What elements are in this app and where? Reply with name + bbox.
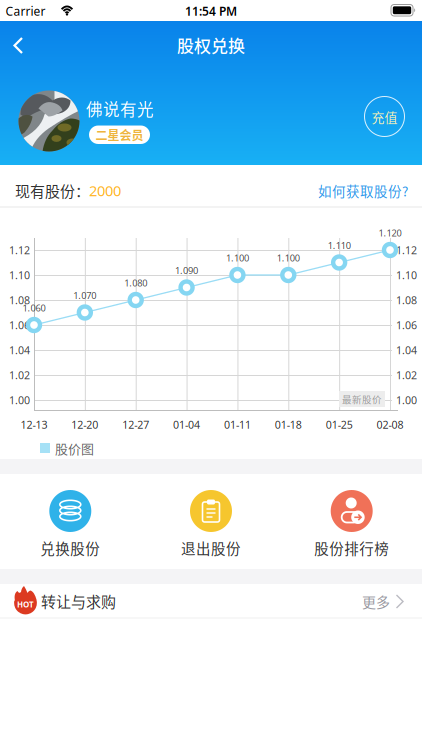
button[interactable]: 如何获取股份? bbox=[288, 177, 408, 203]
staticText: 股权兑换 bbox=[177, 33, 245, 57]
button[interactable]: HOT bbox=[0, 584, 422, 618]
staticText: 12-27 bbox=[122, 417, 149, 432]
staticText: 更多 bbox=[362, 591, 390, 612]
staticText: 1.070 bbox=[73, 289, 96, 302]
staticText: 1.080 bbox=[124, 277, 147, 289]
staticText: 11:54 PM bbox=[185, 3, 237, 19]
staticText: 01-04 bbox=[173, 417, 200, 432]
staticText: 1.12 bbox=[9, 243, 30, 257]
staticText: 1.04 bbox=[9, 343, 30, 357]
staticText: 1.00 bbox=[9, 393, 30, 407]
staticText: 二星会员 bbox=[95, 126, 143, 143]
staticText: 股价图 bbox=[55, 439, 94, 457]
staticText: 1.12 bbox=[396, 243, 417, 257]
button[interactable]: Back bbox=[0, 29, 36, 62]
staticText: 1.08 bbox=[9, 293, 30, 307]
staticText: 兑换股份 bbox=[40, 537, 100, 558]
staticText: 退出股份 bbox=[181, 537, 241, 558]
staticText: 转让与求购 bbox=[41, 590, 116, 612]
staticText: 1.090 bbox=[175, 264, 198, 277]
staticText: 1.060 bbox=[22, 302, 45, 314]
staticText: 1.10 bbox=[9, 268, 30, 282]
staticText: 1.08 bbox=[396, 293, 417, 307]
staticText: 1.06 bbox=[396, 318, 417, 332]
staticText: 1.02 bbox=[396, 368, 417, 382]
button[interactable]: 兑换股份 bbox=[0, 474, 141, 569]
staticText: Carrier bbox=[5, 3, 45, 19]
staticText: 1.120 bbox=[378, 227, 401, 239]
staticText: 1.00 bbox=[396, 393, 417, 407]
staticText: 1.04 bbox=[396, 343, 417, 357]
staticText: 股份排行榜 bbox=[314, 537, 389, 558]
staticText: 01-18 bbox=[275, 417, 302, 432]
staticText: 01-25 bbox=[326, 417, 353, 432]
staticText: HOT bbox=[17, 599, 34, 610]
button[interactable]: 退出股份 bbox=[141, 474, 281, 569]
staticText: 12-20 bbox=[71, 417, 98, 432]
staticText: 充值 bbox=[371, 107, 397, 126]
button[interactable]: 充值 bbox=[364, 96, 404, 136]
staticText: 1.06 bbox=[9, 318, 30, 332]
staticText: 1.10 bbox=[396, 268, 417, 282]
staticText: 01-11 bbox=[224, 417, 251, 432]
staticText: 现有股份： bbox=[15, 180, 90, 201]
staticText: 1.02 bbox=[9, 368, 30, 382]
staticText: 如何获取股份? bbox=[318, 181, 408, 200]
staticText: 12-13 bbox=[20, 417, 47, 432]
staticText: 佛说有光 bbox=[86, 97, 154, 120]
button[interactable]: 二星会员 bbox=[89, 125, 150, 144]
staticText: 1.100 bbox=[277, 252, 300, 264]
staticText: 2000 bbox=[89, 181, 121, 200]
staticText: 最新股价 bbox=[342, 392, 382, 406]
staticText: 02-08 bbox=[376, 417, 403, 432]
staticText: 1.100 bbox=[226, 252, 249, 264]
button[interactable]: 股份排行榜 bbox=[281, 474, 422, 569]
staticText: 1.110 bbox=[328, 239, 351, 252]
